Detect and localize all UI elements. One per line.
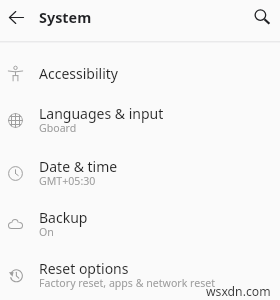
staticText: wsxdn.com: [206, 283, 271, 300]
button[interactable]: Back: [0, 1, 32, 33]
staticText: Languages & input: [39, 104, 164, 123]
button[interactable]: Date & time: [0, 147, 280, 199]
staticText: Backup: [39, 208, 88, 227]
staticText: Date & time: [39, 157, 118, 176]
staticText: Gboard: [39, 121, 77, 135]
staticText: On: [39, 225, 54, 239]
button[interactable]: Accessibility: [0, 52, 280, 94]
button[interactable]: Backup: [0, 199, 280, 250]
button[interactable]: Search: [246, 1, 278, 33]
staticText: System: [39, 8, 92, 28]
staticText: Factory reset, apps & network reset: [39, 276, 216, 290]
button[interactable]: Reset options: [0, 250, 280, 300]
staticText: Accessibility: [39, 64, 118, 83]
staticText: Reset options: [39, 259, 129, 278]
staticText: GMT+05:30: [39, 174, 96, 188]
button[interactable]: Languages & input: [0, 94, 280, 147]
